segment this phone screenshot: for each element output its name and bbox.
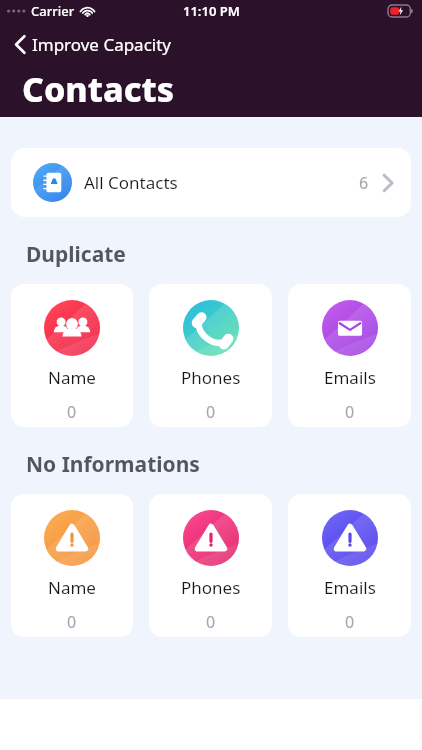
- staticText: 0: [345, 401, 355, 423]
- staticText: All Contacts: [84, 171, 178, 194]
- staticText: 11:10 PM: [183, 2, 240, 20]
- staticText: 0: [206, 611, 216, 633]
- button[interactable]: Name: [11, 494, 133, 637]
- staticText: Contacts: [22, 66, 175, 112]
- staticText: Phones: [181, 576, 241, 599]
- staticText: Emails: [324, 576, 376, 599]
- staticText: Emails: [324, 366, 376, 389]
- staticText: No Informations: [26, 450, 200, 479]
- button[interactable]: Phones: [149, 494, 272, 637]
- button[interactable]: Emails: [288, 284, 411, 427]
- staticText: 0: [345, 611, 355, 633]
- staticText: 0: [67, 401, 77, 423]
- staticText: Name: [48, 576, 96, 599]
- staticText: 6: [359, 172, 369, 194]
- button[interactable]: Phones: [149, 284, 272, 427]
- button[interactable]: Back to Improve Capacity: [8, 29, 178, 59]
- button[interactable]: Emails: [288, 494, 411, 637]
- staticText: Carrier: [31, 2, 75, 20]
- staticText: Phones: [181, 366, 241, 389]
- button[interactable]: Name: [11, 284, 133, 427]
- button[interactable]: All Contacts: [11, 148, 411, 217]
- staticText: Duplicate: [26, 240, 126, 269]
- staticText: 0: [67, 611, 77, 633]
- staticText: Name: [48, 366, 96, 389]
- staticText: 0: [206, 401, 216, 423]
- staticText: Improve Capacity: [32, 33, 172, 56]
